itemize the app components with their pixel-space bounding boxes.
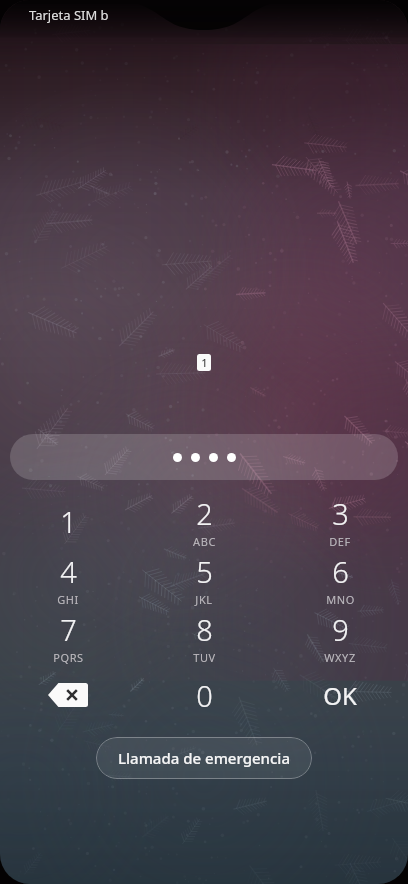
button[interactable]: 5 (136, 550, 272, 608)
staticText: OK (323, 679, 357, 712)
staticText: 1 (201, 355, 208, 370)
staticText: GHI (57, 592, 79, 607)
staticText: TUV (193, 650, 216, 665)
staticText: 7 (60, 610, 77, 649)
button[interactable]: Llamada de emergencia (96, 737, 312, 779)
staticText: ABC (193, 534, 216, 549)
staticText: 4 (60, 552, 77, 591)
staticText: DEF (329, 534, 351, 549)
staticText: 6 (332, 552, 349, 591)
staticText: JKL (195, 592, 213, 607)
button[interactable]: 3 (272, 492, 408, 550)
button[interactable]: 6 (272, 550, 408, 608)
staticText: 3 (332, 494, 349, 533)
staticText: 1 (60, 502, 77, 541)
staticText: 9 (332, 610, 349, 649)
staticText: Tarjeta SIM b (29, 6, 109, 24)
staticText: MNO (326, 592, 355, 607)
button[interactable]: 9 (272, 608, 408, 666)
button[interactable]: 2 (136, 492, 272, 550)
button[interactable]: 1 (0, 492, 136, 550)
staticText: PQRS (53, 650, 84, 665)
button[interactable]: 0 (136, 666, 272, 724)
staticText: 2 (196, 494, 213, 533)
button[interactable] (10, 434, 398, 480)
staticText: 5 (196, 552, 213, 591)
staticText: 8 (196, 610, 213, 649)
staticText: 0 (196, 676, 213, 715)
button[interactable]: Borrar (0, 666, 136, 724)
button[interactable]: 7 (0, 608, 136, 666)
button[interactable]: OK (272, 666, 408, 724)
button[interactable]: 8 (136, 608, 272, 666)
staticText: Llamada de emergencia (118, 748, 290, 768)
button[interactable]: 4 (0, 550, 136, 608)
staticText: WXYZ (324, 650, 356, 665)
